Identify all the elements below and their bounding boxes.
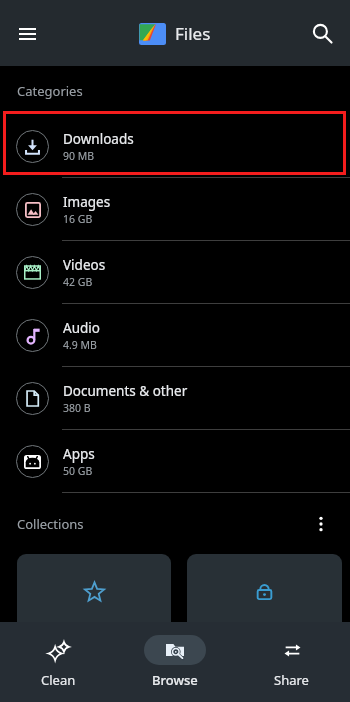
button[interactable]: Share [233, 622, 350, 702]
staticText: 42 GB [63, 275, 93, 289]
staticText: Categories [17, 82, 83, 100]
staticText: Documents & other [63, 382, 188, 400]
staticText: Browse [152, 671, 198, 689]
staticText: Audio [63, 319, 100, 337]
button[interactable]: Clean [0, 622, 116, 702]
staticText: Apps [63, 445, 95, 463]
button[interactable]: Apps [0, 430, 350, 493]
staticText: Images [63, 193, 111, 211]
staticText: Videos [63, 256, 106, 274]
button[interactable]: Safe folder [187, 554, 342, 664]
button[interactable]: Audio [0, 304, 350, 367]
button[interactable]: Images [0, 178, 350, 241]
staticText: 4.9 MB [63, 338, 97, 352]
staticText: 90 MB [63, 149, 95, 163]
button[interactable]: Documents & other [0, 367, 350, 430]
staticText: Share [274, 671, 309, 689]
button[interactable]: Open navigation menu [9, 15, 46, 52]
button[interactable]: Browse [116, 622, 233, 702]
staticText: 16 GB [63, 212, 93, 226]
button[interactable]: More options [308, 511, 334, 537]
button[interactable]: Favorites [17, 554, 171, 664]
staticText: 50 GB [63, 464, 93, 478]
staticText: Clean [41, 671, 76, 689]
staticText: Collections [17, 515, 84, 533]
staticText: Files [175, 22, 211, 45]
button[interactable]: Downloads [0, 115, 350, 178]
staticText: 380 B [63, 401, 91, 415]
staticText: Downloads [63, 130, 134, 148]
button[interactable]: Search [304, 15, 341, 52]
button[interactable]: Videos [0, 241, 350, 304]
